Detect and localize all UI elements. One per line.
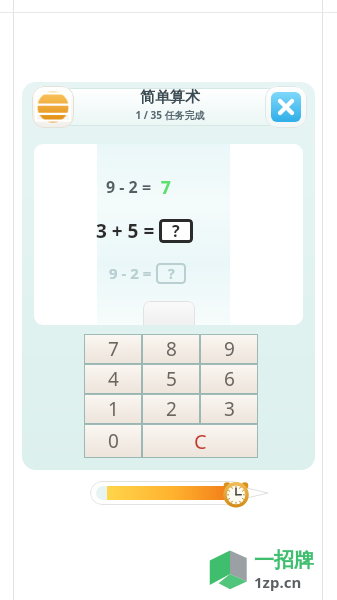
- staticText: 3 + 5 =: [96, 218, 155, 244]
- button[interactable]: 3: [200, 394, 258, 424]
- button[interactable]: 9: [200, 334, 258, 364]
- staticText: 9 - 2 =: [106, 176, 156, 198]
- staticText: 一招牌: [254, 548, 314, 573]
- staticText: ?: [172, 220, 180, 242]
- staticText: 3: [224, 396, 235, 422]
- button[interactable]: 4: [84, 364, 142, 394]
- staticText: 7: [108, 336, 119, 362]
- button[interactable]: C: [142, 424, 258, 458]
- button[interactable]: 7: [84, 334, 142, 364]
- button[interactable]: 8: [142, 334, 200, 364]
- button[interactable]: 6: [200, 364, 258, 394]
- staticText: 1 / 35 任务完成: [135, 108, 205, 122]
- staticText: 9 - 2 =: [109, 263, 152, 283]
- staticText: 9: [224, 336, 235, 362]
- staticText: 1: [108, 396, 119, 422]
- button[interactable]: Answer field: [143, 301, 195, 325]
- staticText: ?: [168, 264, 175, 283]
- button[interactable]: Menu: [32, 86, 74, 128]
- staticText: 6: [224, 366, 235, 392]
- button[interactable]: 1: [84, 394, 142, 424]
- staticText: C: [194, 428, 207, 455]
- staticText: 2: [166, 396, 177, 422]
- button[interactable]: 0: [84, 424, 142, 458]
- button[interactable]: 5: [142, 364, 200, 394]
- staticText: 0: [108, 428, 119, 454]
- button[interactable]: 2: [142, 394, 200, 424]
- staticText: 7: [161, 176, 171, 199]
- staticText: 1zp.cn: [254, 572, 302, 592]
- staticText: 4: [108, 366, 119, 392]
- staticText: 8: [166, 336, 177, 362]
- button[interactable]: Close: [265, 86, 307, 128]
- staticText: 简单算术: [140, 88, 200, 107]
- staticText: 5: [166, 366, 177, 392]
